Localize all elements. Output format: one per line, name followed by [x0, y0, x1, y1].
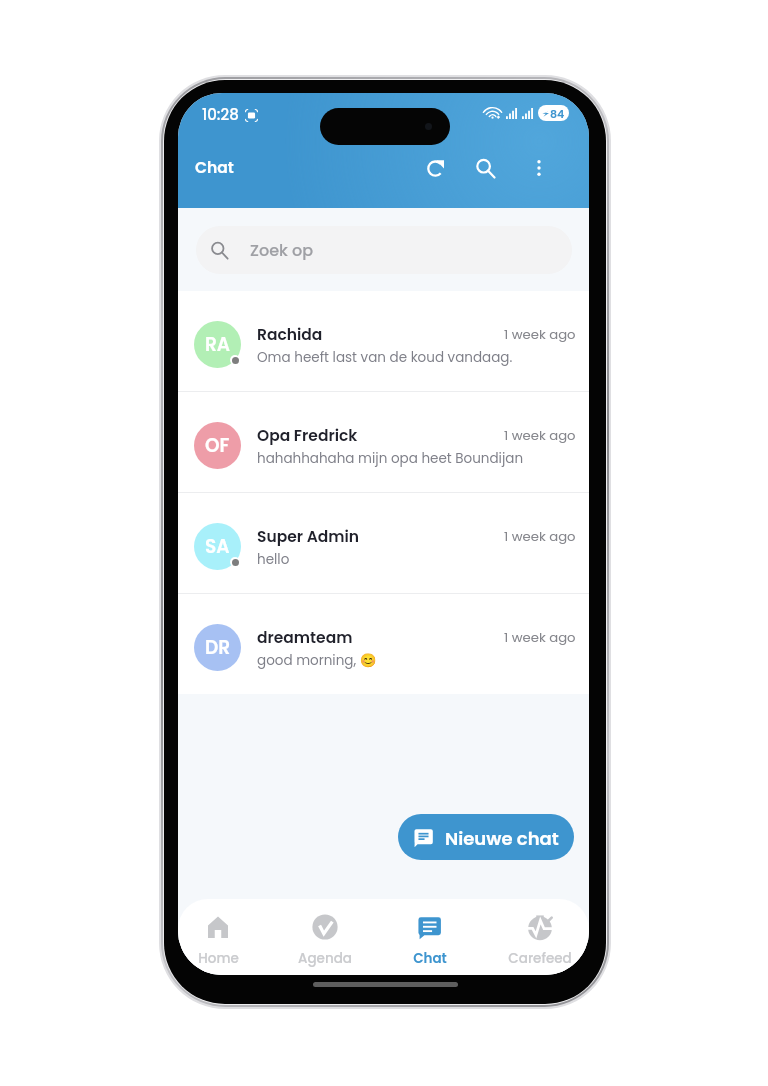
button[interactable]: Search [464, 147, 506, 189]
staticText: 84 [550, 106, 565, 121]
staticText: Agenda [298, 949, 352, 968]
staticText: OF [205, 433, 230, 459]
staticText: hahahhahaha mijn opa heet Boundijan [257, 449, 524, 468]
button[interactable]: Home [178, 899, 266, 975]
staticText: Chat [413, 949, 447, 968]
button[interactable]: OF [178, 392, 589, 492]
button[interactable]: SA [178, 493, 589, 593]
button[interactable]: RA [178, 291, 589, 391]
button[interactable]: Zoek op [196, 226, 572, 274]
staticText: 10:28 [202, 104, 239, 125]
button[interactable]: Refresh [415, 147, 457, 189]
button[interactable]: Chat [382, 899, 478, 975]
staticText: Zoek op [250, 239, 314, 261]
button[interactable]: More options [518, 147, 560, 189]
staticText: Rachida [257, 324, 323, 346]
staticText: Super Admin [257, 526, 360, 548]
staticText: hello [257, 550, 290, 569]
staticText: dreamteam [257, 627, 353, 649]
staticText: 1 week ago [504, 628, 576, 646]
staticText: 1 week ago [504, 426, 576, 444]
button[interactable]: Agenda [277, 899, 373, 975]
staticText: Carefeed [508, 949, 572, 968]
staticText: good morning, 😊 [257, 651, 377, 670]
staticText: Opa Fredrick [257, 425, 358, 447]
staticText: 1 week ago [504, 325, 576, 343]
staticText: Chat [195, 157, 234, 179]
staticText: Home [198, 949, 239, 968]
staticText: RA [205, 332, 231, 358]
staticText: Nieuwe chat [445, 826, 559, 851]
button[interactable]: DR [178, 594, 589, 694]
staticText: Oma heeft last van de koud vandaag. [257, 348, 513, 367]
button[interactable]: Nieuwe chat [398, 814, 574, 860]
staticText: 1 week ago [504, 527, 576, 545]
staticText: SA [205, 534, 230, 560]
button[interactable]: Carefeed [492, 899, 588, 975]
staticText: DR [205, 635, 231, 661]
